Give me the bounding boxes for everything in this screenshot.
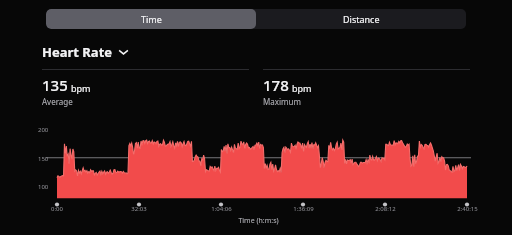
button[interactable]: Time [46, 9, 256, 29]
staticText: Time (h:m:s) [238, 216, 279, 226]
staticText: 1:04:06 [211, 205, 232, 213]
staticText: 135 [42, 75, 68, 95]
staticText: 2:40:15 [457, 205, 478, 213]
button[interactable]: Distance [256, 9, 466, 29]
button[interactable]: Heart Rate [42, 43, 129, 61]
staticText: 200 [38, 126, 49, 134]
other: Change metric [118, 48, 129, 56]
staticText: Heart Rate [42, 43, 113, 61]
staticText: 0:00 [51, 205, 63, 213]
staticText: 2:08:12 [375, 205, 396, 213]
staticText: 150 [38, 155, 49, 163]
staticText: 1:36:09 [293, 205, 314, 213]
staticText: Average [42, 96, 73, 107]
staticText: 178 [263, 75, 289, 95]
staticText: Maximum [263, 96, 301, 107]
staticText: 32:03 [131, 205, 147, 213]
staticText: bpm [292, 82, 312, 94]
staticText: Time [141, 13, 162, 25]
staticText: 100 [38, 183, 49, 191]
staticText: bpm [71, 82, 91, 94]
staticText: Distance [343, 13, 380, 25]
